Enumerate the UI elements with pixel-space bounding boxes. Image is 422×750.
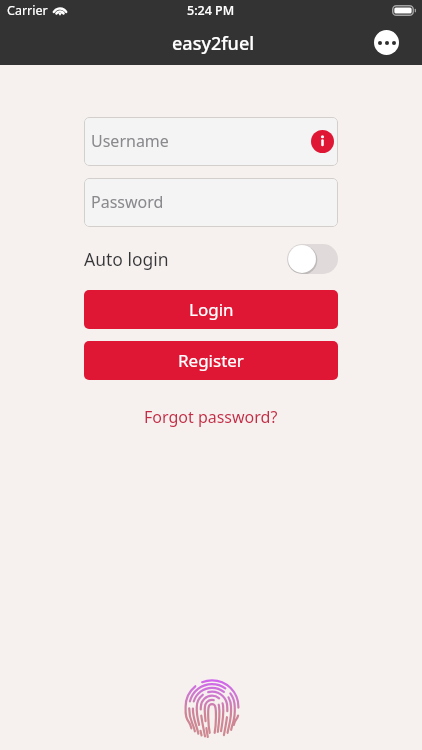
button[interactable]: Info [311, 130, 334, 153]
button[interactable]: Fingerprint login [183, 677, 241, 737]
staticText: 5:24 PM [187, 2, 235, 19]
button[interactable]: Register [84, 341, 338, 380]
staticText: Password [91, 191, 164, 213]
staticText: Login [189, 298, 234, 321]
staticText: Carrier [7, 2, 48, 19]
button[interactable]: Username [84, 117, 338, 166]
button[interactable]: Forgot password? [138, 402, 284, 432]
staticText: Username [91, 130, 169, 152]
button[interactable]: Login [84, 290, 338, 329]
staticText: Register [178, 349, 244, 372]
button[interactable]: Auto login toggle [287, 244, 338, 274]
button[interactable]: Password [84, 178, 338, 227]
button[interactable]: More options [374, 30, 399, 55]
staticText: Auto login [84, 247, 169, 271]
staticText: easy2fuel [172, 31, 255, 56]
